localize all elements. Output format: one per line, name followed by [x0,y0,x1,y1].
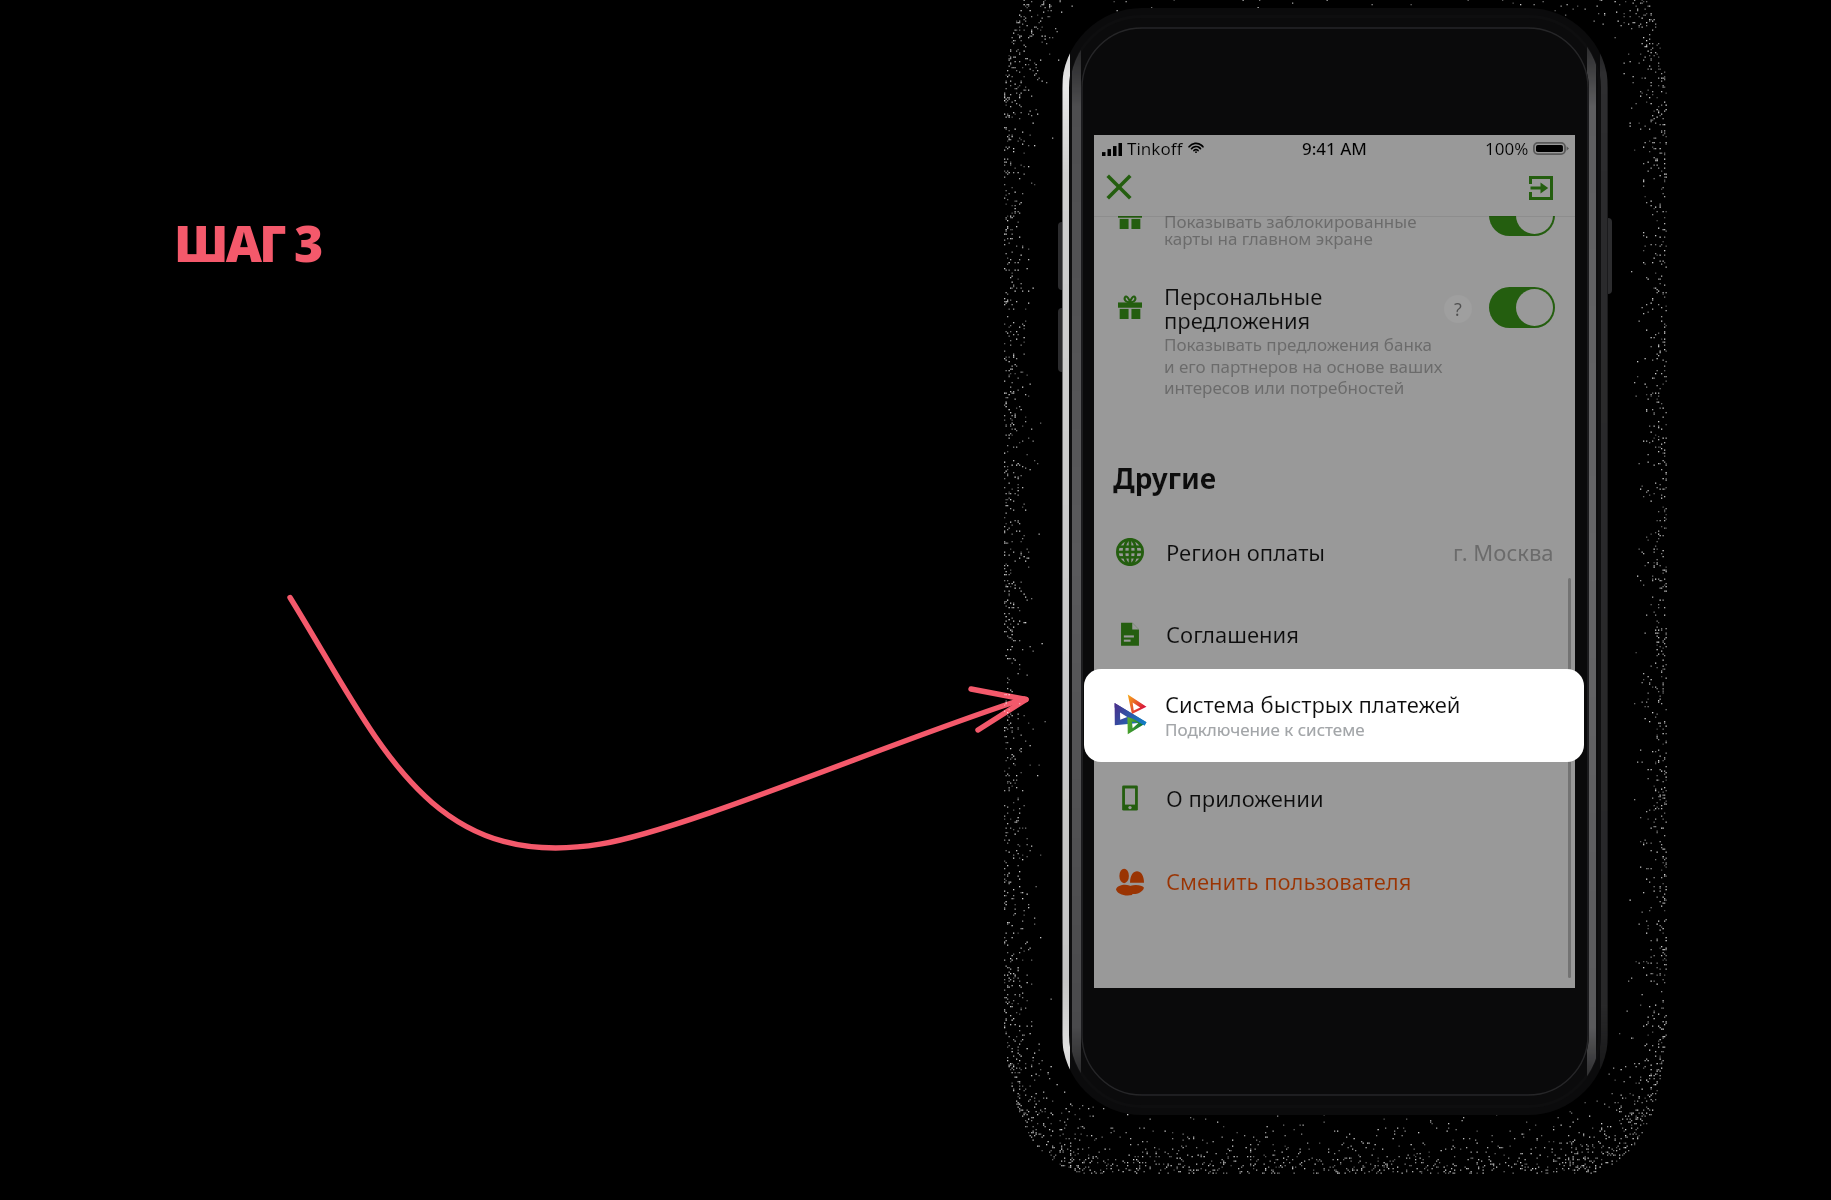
staticText: 9:41 AM [1302,137,1367,160]
button[interactable]: Регион оплаты [1094,528,1575,576]
staticText: О приложении [1166,783,1324,813]
staticText: Регион оплаты [1166,537,1326,567]
staticText: ШАГ 3 [174,209,321,277]
staticText: Показывать предложения банка и его партн… [1164,333,1443,399]
staticText: Сменить пользователя [1166,866,1412,896]
button[interactable]: О приложении [1094,774,1575,822]
button[interactable]: Help [1444,295,1472,323]
staticText: Персональные предложения [1164,281,1323,335]
staticText: Tinkoff [1127,137,1183,160]
button[interactable]: Close [1108,176,1130,198]
button[interactable]: Соглашения [1094,610,1575,658]
staticText: Показывать заблокированные карты на глав… [1164,210,1417,250]
button[interactable]: Система быстрых платежей. Подключение к … [1084,669,1584,762]
button[interactable]: Log out [1529,176,1553,200]
button[interactable]: Показывать заблокированные карты на глав… [1094,185,1575,250]
staticText: Соглашения [1166,619,1299,649]
staticText: Система быстрых платежей [1165,689,1461,719]
staticText: ? [1454,297,1462,322]
staticText: Подключение к системе [1165,718,1365,741]
staticText: г. Москва [1453,537,1554,567]
staticText: Другие [1113,459,1217,497]
button[interactable]: Персональные предложения [1094,270,1575,410]
staticText: 100% [1485,137,1529,160]
button[interactable]: Toggle [1489,195,1555,236]
button[interactable]: Toggle [1489,287,1555,328]
button[interactable]: Сменить пользователя [1094,857,1575,905]
